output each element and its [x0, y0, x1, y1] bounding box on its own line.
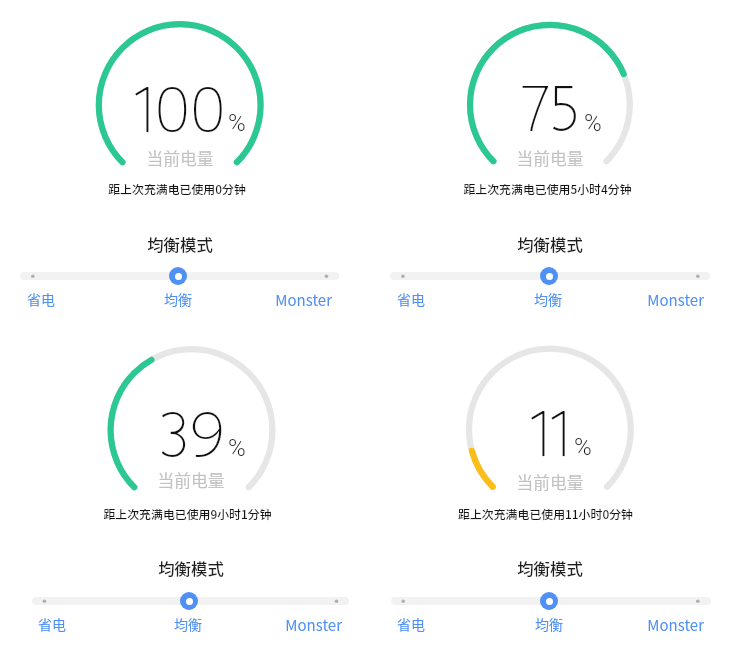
staticText: 均衡: [164, 289, 192, 309]
staticText: %: [228, 109, 246, 137]
button[interactable]: Balanced mode: [540, 592, 558, 610]
button[interactable]: Performance mode slider: [390, 272, 710, 280]
staticText: %: [228, 434, 246, 462]
button[interactable]: Balanced mode: [540, 267, 558, 285]
staticText: 均衡: [174, 614, 202, 634]
staticText: Monster: [647, 289, 704, 311]
staticText: 距上次充满电已使用5小时4分钟: [463, 180, 632, 197]
staticText: 省电: [397, 614, 425, 634]
staticText: %: [574, 433, 592, 461]
staticText: %: [584, 109, 602, 137]
staticText: Monster: [285, 614, 342, 636]
staticText: 39: [159, 398, 225, 472]
staticText: 11: [530, 397, 571, 471]
staticText: 均衡模式: [517, 556, 583, 580]
button[interactable]: Balanced mode: [169, 267, 187, 285]
staticText: 省电: [27, 289, 55, 309]
staticText: 均衡: [535, 614, 563, 634]
button[interactable]: Performance mode slider: [391, 597, 711, 605]
staticText: 均衡模式: [158, 556, 224, 580]
staticText: 距上次充满电已使用9小时1分钟: [103, 505, 272, 522]
staticText: 省电: [38, 614, 66, 634]
staticText: Monster: [647, 614, 704, 636]
staticText: 当前电量: [516, 470, 584, 494]
staticText: 当前电量: [157, 468, 225, 492]
staticText: 当前电量: [516, 146, 584, 170]
staticText: 均衡: [534, 289, 562, 309]
staticText: Monster: [275, 289, 332, 311]
staticText: 距上次充满电已使用11小时0分钟: [458, 505, 633, 522]
staticText: 75: [521, 72, 580, 146]
staticText: 当前电量: [146, 146, 214, 170]
button[interactable]: Performance mode slider: [20, 272, 339, 280]
staticText: 距上次充满电已使用0分钟: [108, 180, 246, 197]
button[interactable]: Balanced mode: [180, 592, 198, 610]
staticText: 省电: [397, 289, 425, 309]
staticText: 均衡模式: [517, 232, 583, 256]
button[interactable]: Performance mode slider: [32, 597, 349, 605]
staticText: 100: [134, 73, 226, 147]
staticText: 均衡模式: [147, 232, 213, 256]
